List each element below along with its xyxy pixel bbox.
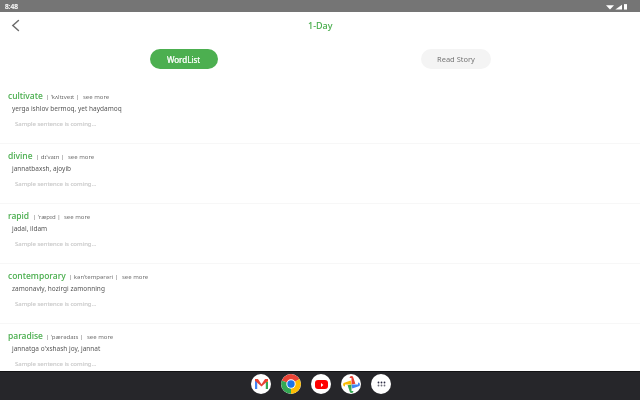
staticText: paradise	[8, 330, 43, 342]
staticText: | dɪˈvaɪn |	[36, 153, 65, 161]
staticText: see more	[68, 153, 95, 161]
staticText: | kənˈtempərəri |	[69, 273, 119, 281]
button[interactable]: WordList	[150, 49, 218, 69]
button[interactable]: paradise	[0, 324, 640, 375]
staticText: | ˈkʌltɪveɪt |	[46, 93, 80, 101]
staticText: Sample sentence is coming...	[15, 300, 97, 308]
staticText: Sample sentence is coming...	[15, 240, 97, 248]
staticText: | ˈræpɪd |	[33, 213, 61, 221]
button[interactable]: Gmail	[251, 374, 271, 394]
staticText: rapid	[8, 210, 30, 222]
button[interactable]: Read Story	[421, 49, 491, 69]
button[interactable]: All apps	[371, 374, 391, 394]
staticText: yerga ishlov bermoq, yet haydamoq	[12, 104, 122, 113]
staticText: jannatbaxsh, ajoyib	[12, 164, 72, 173]
button[interactable]: Photos	[341, 374, 361, 394]
button[interactable]: divine	[0, 144, 640, 204]
staticText: see more	[64, 213, 91, 221]
staticText: Sample sentence is coming...	[15, 180, 97, 188]
staticText: contemporary	[8, 270, 66, 282]
staticText: divine	[8, 150, 33, 162]
button[interactable]: contemporary	[0, 264, 640, 324]
button[interactable]: Back	[5, 15, 25, 35]
staticText: see more	[87, 333, 114, 341]
staticText: jannatga o'xshash joy, jannat	[12, 344, 101, 353]
staticText: see more	[83, 93, 110, 101]
staticText: see more	[122, 273, 149, 281]
button[interactable]: rapid	[0, 204, 640, 264]
button[interactable]: cultivate	[0, 84, 640, 144]
staticText: zamonaviy, hozirgi zamonning	[12, 284, 105, 293]
staticText: jadal, ildam	[12, 224, 48, 233]
staticText: 8:48	[5, 2, 18, 11]
button[interactable]: YouTube	[311, 374, 331, 394]
staticText: Sample sentence is coming...	[15, 360, 97, 368]
staticText: | ˈpærədaɪs |	[46, 333, 84, 341]
button[interactable]: Chrome	[281, 374, 301, 394]
staticText: 1-Day	[308, 19, 333, 31]
staticText: Sample sentence is coming...	[15, 120, 97, 128]
staticText: WordList	[167, 54, 201, 65]
staticText: Read Story	[437, 54, 475, 64]
staticText: cultivate	[8, 90, 43, 102]
